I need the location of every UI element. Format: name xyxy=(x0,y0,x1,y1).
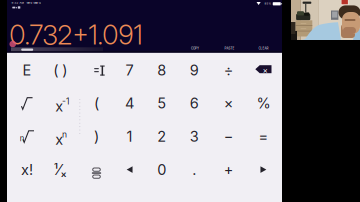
staticText: -1 xyxy=(62,96,69,106)
button[interactable]: One over x xyxy=(45,156,76,184)
button[interactable]: Minus xyxy=(213,122,244,150)
staticText: 0.732+1.091 xyxy=(9,19,142,51)
button[interactable]: Square root xyxy=(11,89,42,117)
button[interactable]: Insert xyxy=(81,56,112,84)
staticText: CLEAR xyxy=(258,46,268,50)
button[interactable]: x to the n xyxy=(45,122,76,150)
button[interactable]: Move left xyxy=(114,156,145,184)
staticText: x! xyxy=(21,161,33,178)
staticText: n xyxy=(20,134,25,143)
staticText: . xyxy=(192,161,196,178)
staticText: x xyxy=(55,97,63,115)
staticText: ¹⁄ₓ xyxy=(54,161,67,178)
staticText: + xyxy=(224,161,234,178)
staticText: 9 xyxy=(190,61,199,79)
staticText: 3 xyxy=(190,128,199,145)
button[interactable]: Factorial xyxy=(11,156,42,184)
button[interactable]: 3 xyxy=(179,122,210,150)
button[interactable]: Multiply xyxy=(213,89,244,117)
staticText: ) xyxy=(94,128,99,145)
button[interactable]: Open parenthesis xyxy=(81,89,112,117)
staticText: 0 xyxy=(157,161,166,178)
button[interactable]: 8 xyxy=(146,56,177,84)
staticText: % xyxy=(256,94,270,112)
button[interactable]: Percent xyxy=(248,89,279,117)
button[interactable]: Equals xyxy=(248,122,279,150)
staticText: 2 xyxy=(157,128,166,145)
button[interactable]: Fraction xyxy=(81,156,112,184)
staticText: × xyxy=(224,94,234,112)
staticText: 7 xyxy=(126,61,134,79)
button[interactable]: 1 xyxy=(114,122,145,150)
staticText: ÷ xyxy=(224,61,234,79)
staticText: COPY xyxy=(191,46,199,50)
staticText: ( ) xyxy=(53,61,67,79)
button[interactable]: Delete xyxy=(248,56,279,84)
button[interactable]: PASTE xyxy=(218,46,240,51)
staticText: x xyxy=(55,131,63,148)
staticText: 5 xyxy=(157,94,166,112)
button[interactable]: Nth root xyxy=(11,122,42,150)
button[interactable]: 9 xyxy=(179,56,210,84)
button[interactable]: 5 xyxy=(146,89,177,117)
staticText: ( xyxy=(94,94,99,112)
staticText: 4 xyxy=(125,94,134,112)
button[interactable]: Close parenthesis xyxy=(81,122,112,150)
button[interactable]: Divide xyxy=(213,56,244,84)
button[interactable]: Parentheses xyxy=(45,56,76,84)
staticText: × xyxy=(262,65,267,75)
staticText: 1 xyxy=(127,128,133,145)
staticText: 8 xyxy=(157,61,166,79)
staticText: − xyxy=(224,128,234,145)
button[interactable]: Move right xyxy=(248,156,279,184)
staticText: 6 xyxy=(190,94,199,112)
staticText: n xyxy=(62,129,67,139)
button[interactable]: 0 xyxy=(146,156,177,184)
staticText: PASTE xyxy=(224,46,234,50)
button[interactable]: 4 xyxy=(114,89,145,117)
staticText: 85% xyxy=(264,2,271,5)
button[interactable]: COPY xyxy=(184,46,206,51)
button[interactable]: 6 xyxy=(179,89,210,117)
staticText: = xyxy=(258,128,268,145)
staticText: E xyxy=(22,61,31,79)
button[interactable]: 2 xyxy=(146,122,177,150)
button[interactable]: Plus xyxy=(213,156,244,184)
staticText: 9:32 AM Wed May 12 xyxy=(11,1,41,4)
button[interactable]: 7 xyxy=(114,56,145,84)
button[interactable]: x inverse xyxy=(45,89,76,117)
button[interactable]: Decimal point xyxy=(179,156,210,184)
button[interactable]: CLEAR xyxy=(252,46,274,51)
button[interactable]: E xyxy=(11,56,42,84)
